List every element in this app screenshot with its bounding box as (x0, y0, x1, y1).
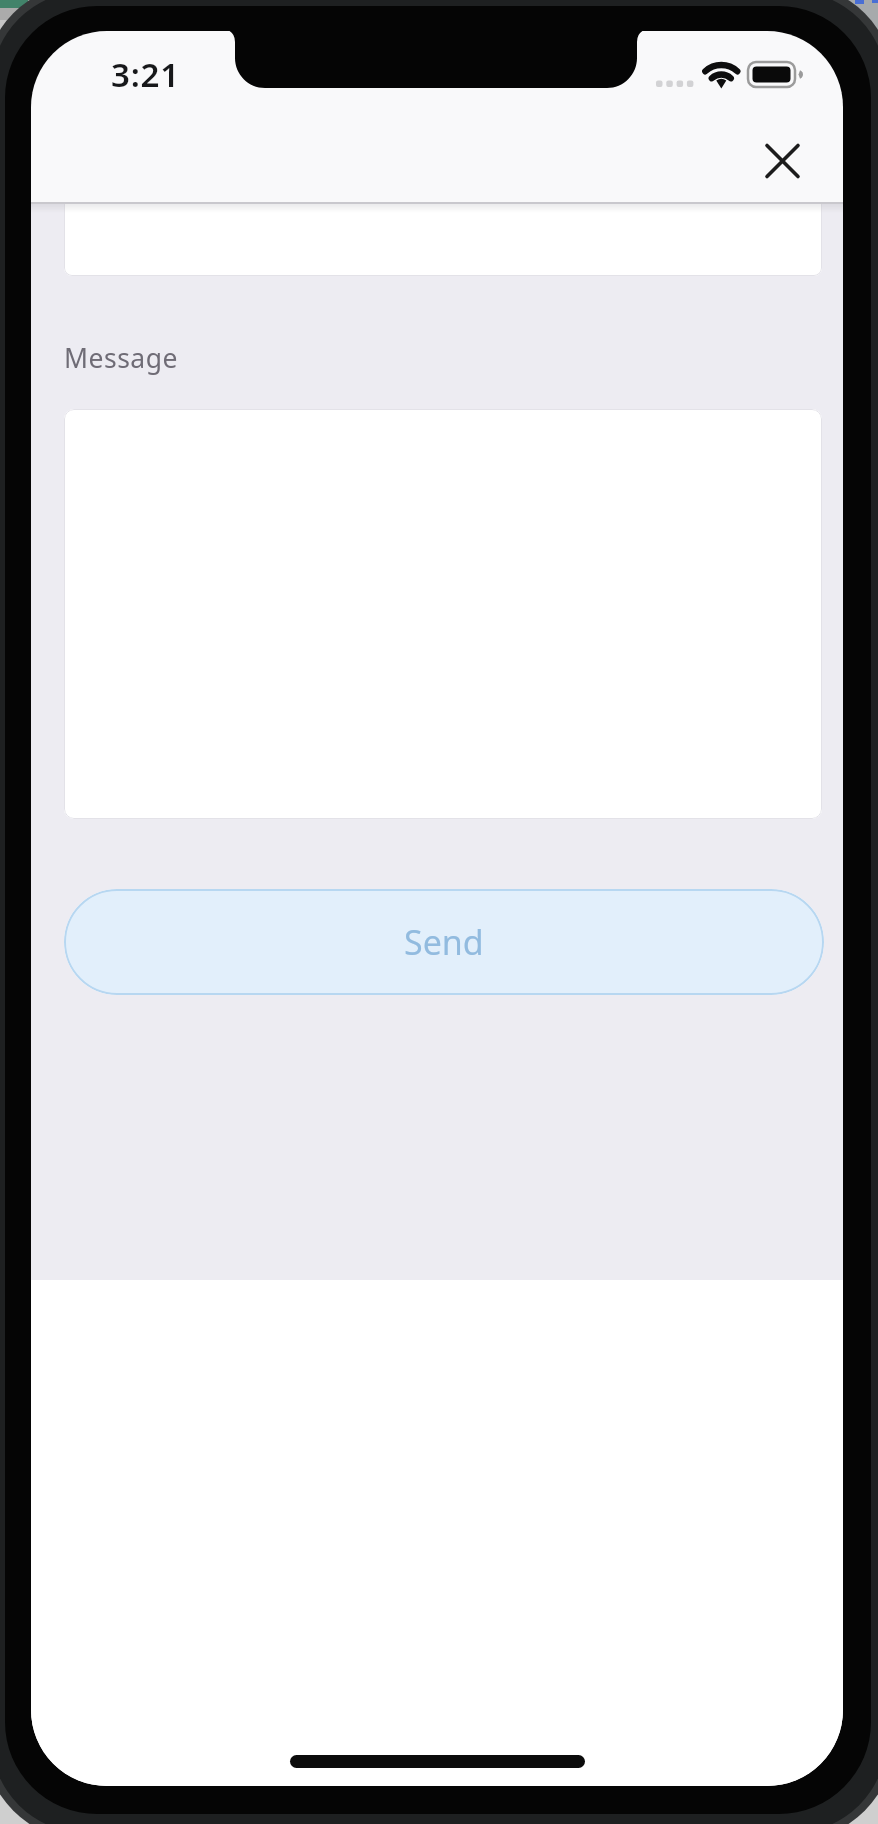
staticText: 3:21 (111, 52, 180, 97)
button[interactable]: Send (64, 889, 824, 995)
staticText: Message (64, 340, 178, 376)
staticText: Send (404, 919, 484, 965)
button[interactable] (64, 203, 822, 276)
button[interactable] (750, 129, 814, 193)
